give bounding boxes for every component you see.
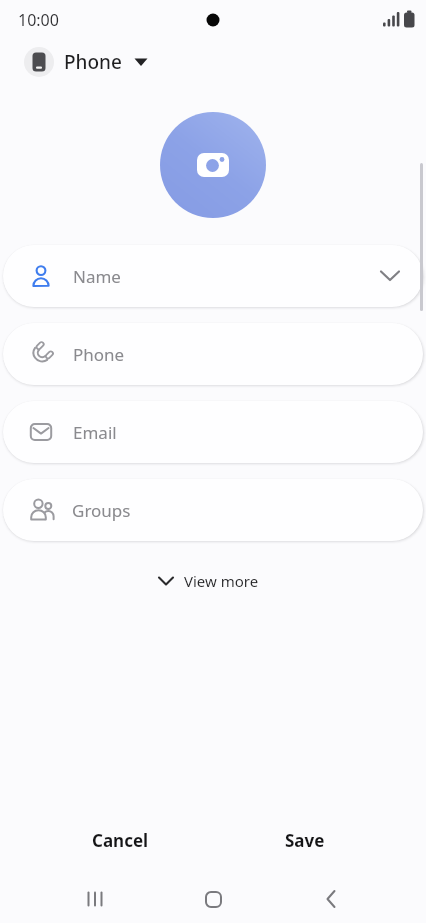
staticText: Phone: [73, 343, 125, 366]
button[interactable]: View more: [150, 563, 267, 599]
staticText: 10:00: [18, 9, 59, 31]
staticText: View more: [184, 571, 259, 591]
button[interactable]: Email: [3, 401, 423, 463]
button[interactable]: [160, 112, 266, 218]
button[interactable]: Save: [255, 818, 355, 862]
button[interactable]: Phone: [24, 47, 148, 77]
button[interactable]: Groups: [3, 479, 423, 541]
button[interactable]: [71, 875, 119, 923]
button[interactable]: Cancel: [68, 818, 172, 862]
staticText: Groups: [72, 499, 131, 522]
staticText: Save: [285, 829, 325, 852]
button[interactable]: [307, 875, 355, 923]
button[interactable]: [189, 875, 237, 923]
staticText: Name: [73, 265, 121, 288]
button[interactable]: Name: [3, 245, 423, 307]
staticText: Phone: [64, 49, 122, 75]
staticText: Email: [73, 421, 117, 444]
staticText: Cancel: [92, 829, 149, 852]
button[interactable]: Phone: [3, 323, 423, 385]
